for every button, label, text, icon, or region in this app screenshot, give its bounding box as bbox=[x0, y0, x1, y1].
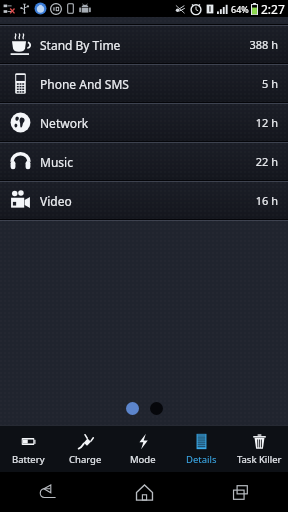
button[interactable]: Task Killer bbox=[230, 426, 288, 472]
button[interactable]: Battery bbox=[0, 426, 57, 472]
staticText: 64% bbox=[231, 3, 249, 15]
staticText: 12 h bbox=[255, 115, 278, 130]
staticText: 2:27 bbox=[261, 1, 285, 17]
button[interactable]: Details bbox=[172, 426, 230, 472]
button[interactable]: Music bbox=[0, 143, 288, 180]
staticText: 22 h bbox=[255, 154, 278, 169]
button[interactable]: Stand By Time bbox=[0, 26, 288, 63]
button[interactable]: Phone And SMS bbox=[0, 65, 288, 102]
staticText: Network bbox=[40, 115, 89, 131]
button[interactable]: Page 2 bbox=[150, 402, 163, 415]
staticText: Details bbox=[186, 453, 217, 466]
staticText: 5 h bbox=[262, 76, 278, 91]
button[interactable]: Recent apps bbox=[192, 472, 288, 512]
staticText: Task Killer bbox=[237, 453, 282, 466]
button[interactable]: Mode bbox=[114, 426, 172, 472]
staticText: Mode bbox=[130, 453, 156, 466]
staticText: Battery bbox=[12, 453, 45, 466]
button[interactable]: Page 1 bbox=[126, 402, 139, 415]
staticText: Music bbox=[40, 154, 73, 170]
button[interactable]: Back bbox=[0, 472, 96, 512]
staticText: Video bbox=[40, 193, 72, 209]
button[interactable]: Network bbox=[0, 104, 288, 141]
button[interactable]: Video bbox=[0, 182, 288, 219]
staticText: Charge bbox=[69, 453, 102, 466]
staticText: 388 h bbox=[249, 37, 278, 52]
staticText: Phone And SMS bbox=[40, 76, 129, 92]
button[interactable]: Home bbox=[96, 472, 192, 512]
button[interactable]: Charge bbox=[57, 426, 114, 472]
staticText: Stand By Time bbox=[40, 37, 121, 53]
staticText: 16 h bbox=[255, 193, 278, 208]
